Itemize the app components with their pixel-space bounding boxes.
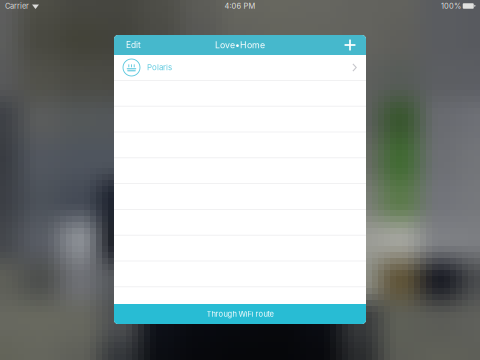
- staticText: Through WiFi route: [206, 309, 273, 319]
- staticText: Polaris: [147, 63, 172, 72]
- staticText: Edit: [126, 40, 141, 50]
- staticText: Love•Home: [215, 40, 265, 50]
- staticText: 4:06 PM: [224, 1, 255, 10]
- button[interactable]: Polaris: [114, 55, 366, 81]
- staticText: 100%: [441, 1, 461, 10]
- button[interactable]: Add device: [338, 35, 362, 55]
- staticText: Carrier: [5, 1, 29, 10]
- button[interactable]: Through WiFi route: [114, 304, 366, 324]
- button[interactable]: Edit: [118, 35, 149, 55]
